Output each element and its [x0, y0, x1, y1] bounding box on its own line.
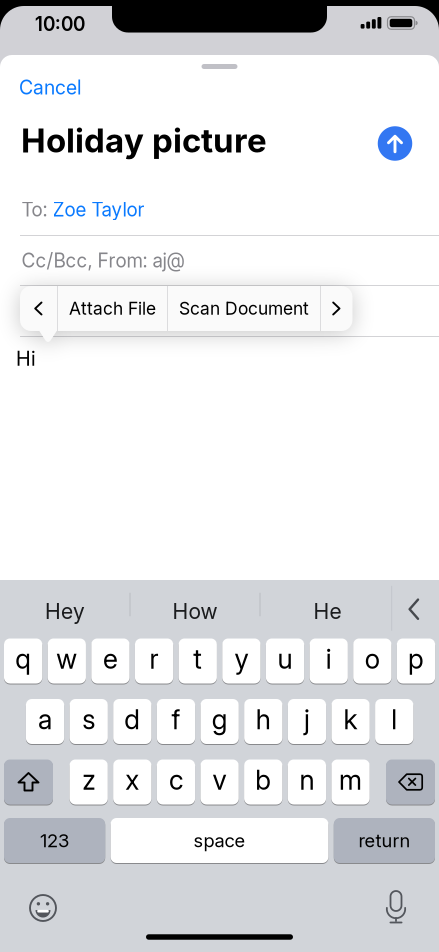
button[interactable]: l [375, 699, 413, 744]
button[interactable]: j [288, 699, 326, 744]
staticText: h [256, 703, 271, 736]
button[interactable]: g [200, 699, 239, 744]
staticText: d [124, 703, 140, 736]
button[interactable]: Hey [5, 589, 125, 634]
staticText: x [125, 764, 139, 796]
button[interactable]: v [200, 759, 239, 804]
staticText: y [234, 643, 248, 675]
button[interactable]: More options [322, 291, 351, 325]
button[interactable]: h [244, 699, 282, 744]
button[interactable]: return [334, 818, 435, 863]
button[interactable]: Previous options [24, 291, 53, 325]
button[interactable]: f [157, 699, 195, 744]
staticText: a [38, 703, 52, 736]
staticText: b [255, 764, 271, 796]
staticText: 123 [40, 829, 69, 852]
button[interactable]: Numbers [4, 818, 105, 863]
staticText: space [193, 829, 245, 852]
button[interactable]: a [26, 699, 64, 744]
staticText: Cancel [19, 76, 82, 99]
button[interactable]: Delete [386, 759, 435, 804]
button[interactable]: Cancel [19, 76, 82, 99]
staticText: g [212, 703, 228, 736]
button[interactable]: z [69, 759, 108, 804]
staticText: Zoe Taylor [52, 198, 144, 221]
staticText: o [365, 643, 380, 675]
staticText: c [169, 764, 183, 796]
staticText: Scan Document [179, 298, 309, 319]
staticText: j [304, 703, 310, 736]
staticText: 10:00 [35, 12, 85, 35]
button[interactable]: Emoji [22, 887, 64, 929]
button[interactable]: u [266, 638, 304, 683]
button[interactable]: m [331, 759, 370, 804]
button[interactable]: k [331, 699, 370, 744]
button[interactable]: x [113, 759, 151, 804]
button[interactable]: He [267, 589, 387, 634]
staticText: r [150, 643, 159, 675]
button[interactable]: q [4, 638, 42, 683]
button[interactable]: Send [378, 126, 412, 161]
staticText: w [56, 643, 77, 675]
staticText: Cc/Bcc, From: aj@ [21, 249, 184, 272]
staticText: Attach File [69, 298, 156, 319]
staticText: u [277, 643, 292, 675]
button[interactable]: Collapse predictions [400, 590, 427, 628]
button[interactable]: y [222, 638, 260, 683]
staticText: v [213, 764, 227, 796]
button[interactable]: o [353, 638, 391, 683]
staticText: To: [21, 198, 52, 221]
staticText: f [171, 703, 180, 736]
staticText: Hi [16, 346, 36, 371]
button[interactable]: p [397, 638, 435, 683]
staticText: Holiday picture [21, 120, 267, 160]
button[interactable]: t [179, 638, 217, 683]
staticText: p [408, 643, 424, 675]
button[interactable]: Shift [4, 759, 53, 804]
staticText: return [358, 829, 410, 852]
button[interactable]: Attach File [57, 286, 167, 331]
staticText: i [326, 643, 332, 675]
button[interactable]: d [113, 699, 151, 744]
button[interactable]: b [244, 759, 282, 804]
button[interactable]: Scan Document [167, 286, 320, 331]
button[interactable]: Cc/Bcc, From: aj@ [0, 235, 439, 285]
button[interactable]: To: [0, 184, 439, 234]
staticText: l [391, 703, 397, 736]
button[interactable]: r [135, 638, 173, 683]
button[interactable]: Dictation [376, 882, 416, 931]
staticText: t [193, 643, 202, 675]
staticText: e [103, 643, 118, 675]
button[interactable]: e [91, 638, 130, 683]
staticText: z [82, 764, 95, 796]
button[interactable]: How [135, 589, 255, 634]
staticText: m [339, 764, 362, 796]
button[interactable]: n [288, 759, 326, 804]
button[interactable]: space [111, 818, 328, 863]
staticText: q [15, 643, 31, 675]
staticText: k [344, 703, 358, 736]
button[interactable]: c [157, 759, 195, 804]
staticText: Hey [45, 598, 85, 624]
staticText: n [299, 764, 314, 796]
button[interactable]: i [310, 638, 348, 683]
button[interactable]: w [48, 638, 86, 683]
staticText: He [313, 598, 341, 624]
button[interactable]: s [69, 699, 108, 744]
staticText: s [82, 703, 95, 736]
staticText: How [172, 598, 217, 624]
